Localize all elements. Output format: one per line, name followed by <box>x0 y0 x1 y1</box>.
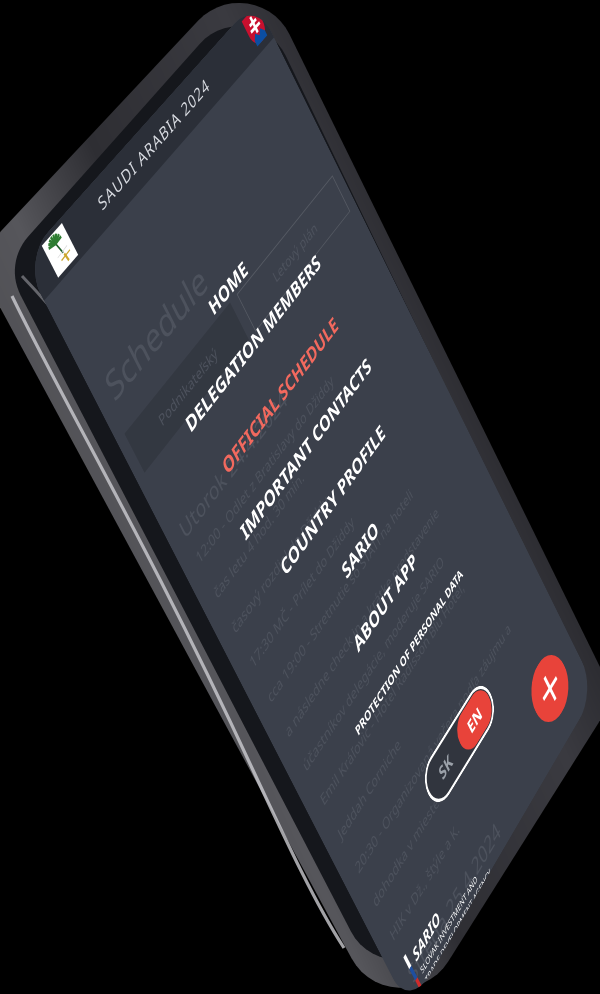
button[interactable]: SARIO <box>0 492 400 557</box>
staticText: Letový plán <box>257 225 338 245</box>
button[interactable]: IMPORTANT CONTACTS <box>0 362 400 427</box>
staticText: 17:30 MČ - Prílet do Džiddy <box>20 484 209 504</box>
button[interactable]: Podnikateľský <box>12 212 194 258</box>
staticText: SAUDI ARABIA 2024 <box>106 11 295 36</box>
staticText: čas letu 4 hod. 30 min. <box>20 400 178 420</box>
staticText: PROTECTION OF PERSONAL DATA <box>94 642 306 660</box>
staticText: Emil Kráľovič - Hotel Radisson Blu Hotel… <box>20 652 300 672</box>
staticText: časový rozdiel do Džiddy <box>20 442 193 462</box>
staticText: COUNTRY PROFILE <box>103 445 297 474</box>
button[interactable]: PROTECTION OF PERSONAL DATA <box>0 622 400 680</box>
staticText: DELEGATION MEMBERS <box>80 250 321 279</box>
button[interactable]: Add <box>311 809 375 873</box>
staticText: Schedule <box>18 140 181 192</box>
staticText: 12:00 - Odlet z Bratislavy do Džiddy <box>20 358 267 378</box>
staticText: účastníkov delegácie, moderuje SARIO <box>20 610 291 630</box>
staticText: IMPORTANT CONTACTS <box>80 380 320 409</box>
button[interactable]: ABOUT APP <box>0 557 400 622</box>
staticText: 20:30 - Organizovaná večera podľa záujmu… <box>20 736 331 756</box>
button[interactable]: DELEGATION MEMBERS <box>0 232 400 297</box>
staticText: ABOUT APP <box>140 575 260 604</box>
staticText: a následne check in a krátke predstaveni… <box>20 568 314 588</box>
button[interactable]: Letový plán <box>206 212 388 258</box>
staticText: SARIO <box>168 510 233 539</box>
button[interactable]: SK <box>138 750 268 798</box>
button[interactable]: HOME <box>0 167 400 232</box>
button[interactable]: COUNTRY PROFILE <box>0 427 400 492</box>
staticText: Podnikateľský <box>54 225 152 245</box>
staticText: cca 19:00 - Stretnutie so ŠTÁTi na hotel… <box>20 526 294 546</box>
staticText: Utorok 24.4.2024 <box>18 318 203 349</box>
button[interactable]: OFFICIAL SCHEDULE <box>0 297 400 362</box>
staticText: OFFICIAL SCHEDULE <box>96 315 305 344</box>
